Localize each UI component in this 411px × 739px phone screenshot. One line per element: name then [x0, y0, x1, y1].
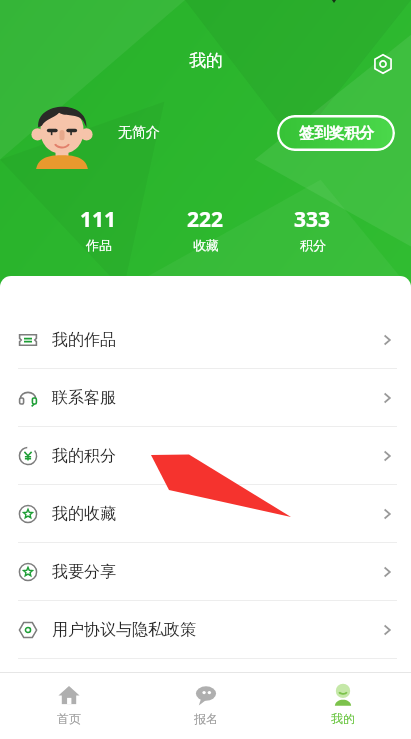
- staticText: 333: [294, 205, 331, 234]
- staticText: 用户协议与隐私政策: [52, 620, 196, 640]
- staticText: 222: [187, 205, 224, 234]
- staticText: 收藏: [193, 237, 219, 253]
- button[interactable]: 我要分享: [0, 543, 411, 600]
- staticText: 我的积分: [52, 446, 116, 466]
- button[interactable]: 我的: [274, 673, 411, 726]
- staticText: 首页: [57, 711, 81, 726]
- staticText: 联系客服: [52, 388, 116, 408]
- staticText: 我的作品: [52, 330, 116, 350]
- button[interactable]: 我的收藏: [0, 485, 411, 542]
- button[interactable]: Settings: [363, 44, 403, 84]
- button[interactable]: 签到奖积分: [277, 115, 395, 151]
- button[interactable]: Avatar: [26, 97, 98, 169]
- staticText: 我的: [331, 711, 355, 726]
- staticText: 111: [80, 205, 117, 234]
- staticText: 报名: [194, 711, 218, 726]
- staticText: 作品: [86, 237, 112, 253]
- staticText: 我要分享: [52, 562, 116, 582]
- button[interactable]: 联系客服: [0, 369, 411, 426]
- button[interactable]: 报名: [137, 673, 274, 726]
- staticText: 签到奖积分: [299, 124, 374, 143]
- staticText: 无简介: [118, 124, 160, 142]
- button[interactable]: 我的作品: [0, 311, 411, 368]
- staticText: 我的: [189, 50, 223, 71]
- button[interactable]: 首页: [0, 673, 137, 726]
- staticText: 积分: [300, 237, 326, 253]
- button[interactable]: 用户协议与隐私政策: [0, 601, 411, 658]
- button[interactable]: 我的积分: [0, 427, 411, 484]
- staticText: 我的收藏: [52, 504, 116, 524]
